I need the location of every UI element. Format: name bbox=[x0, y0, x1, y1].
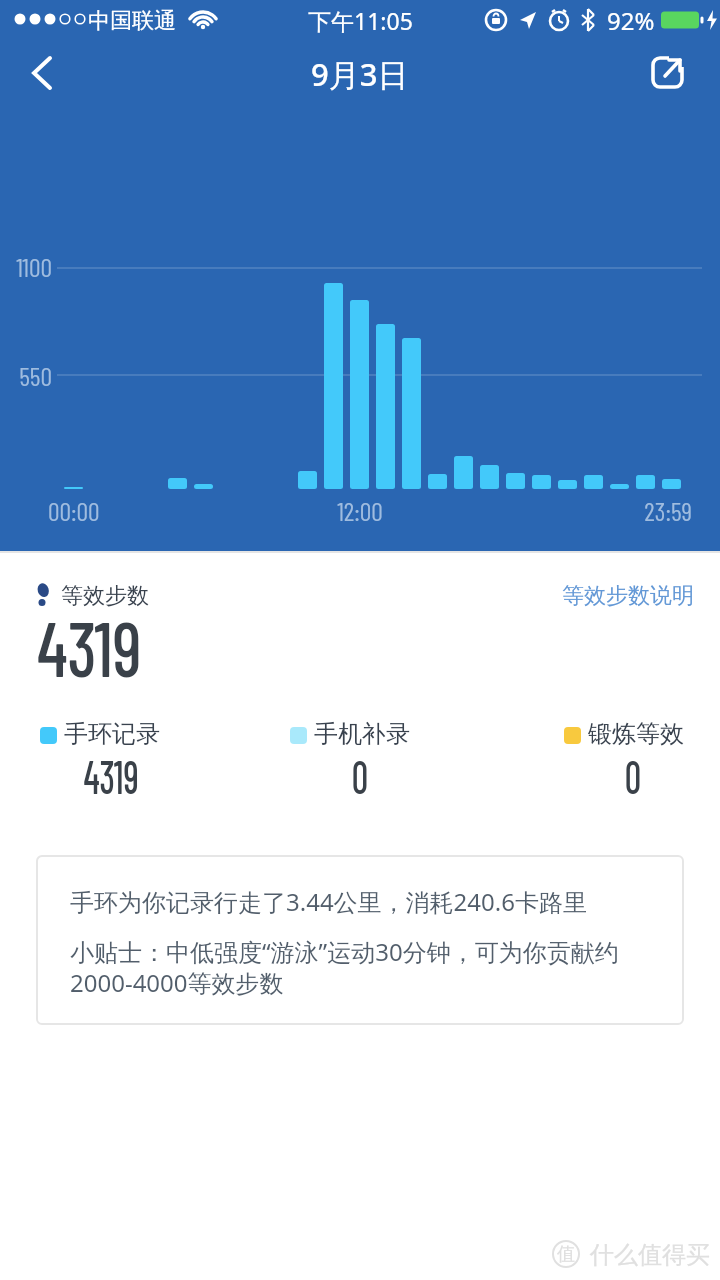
staticText: 0 bbox=[305, 747, 415, 803]
staticText: 0 bbox=[578, 747, 688, 803]
staticText: 等效步数说明 bbox=[400, 582, 694, 610]
staticText: 4319 bbox=[56, 747, 166, 803]
staticText: 小贴士：中低强度“游泳”运动30分钟，可为你贡献约 2000-4000等效步数 bbox=[70, 935, 619, 999]
staticText: 手环记录 bbox=[64, 719, 160, 749]
button[interactable] bbox=[640, 46, 696, 98]
staticText: 值 bbox=[557, 1243, 575, 1266]
staticText: 92% bbox=[607, 4, 655, 37]
staticText: 1100 bbox=[0, 251, 52, 282]
staticText: 下午11:05 bbox=[308, 5, 413, 36]
staticText: 12:00 bbox=[310, 495, 410, 526]
button[interactable] bbox=[16, 48, 68, 100]
staticText: 等效步数 bbox=[61, 582, 149, 610]
staticText: 4319 bbox=[37, 599, 142, 693]
staticText: 23:59 bbox=[600, 495, 692, 526]
staticText: 00:00 bbox=[48, 495, 100, 526]
staticText: 锻炼等效 bbox=[588, 719, 684, 749]
staticText: 手机补录 bbox=[314, 719, 410, 749]
staticText: 手环为你记录行走了3.44公里，消耗240.6卡路里 bbox=[70, 885, 587, 918]
staticText: 9月3日 bbox=[311, 53, 409, 95]
staticText: 什么值得买 bbox=[590, 1240, 710, 1270]
staticText: 中国联通 bbox=[88, 7, 176, 35]
staticText: 550 bbox=[0, 360, 52, 391]
button[interactable]: 等效步数说明 bbox=[400, 582, 694, 610]
